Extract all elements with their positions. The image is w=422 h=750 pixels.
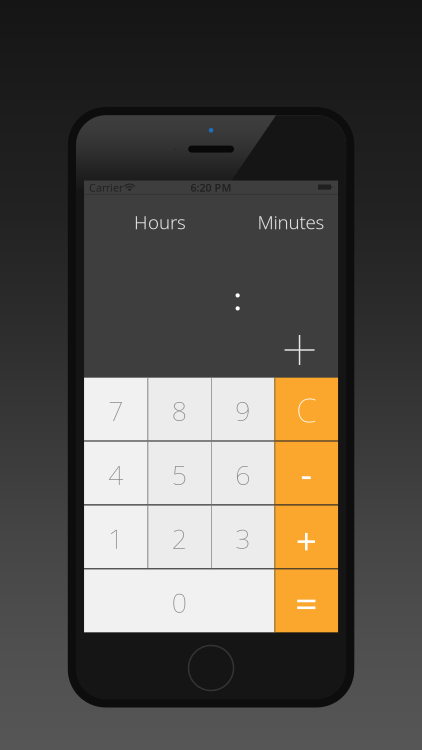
staticText: Hours <box>134 209 186 234</box>
staticText: 2 <box>172 521 187 556</box>
button[interactable]: 2 <box>148 505 211 568</box>
staticText: 6:20 PM <box>191 180 232 195</box>
staticText: Carrier <box>89 180 123 195</box>
staticText: 4 <box>108 457 123 492</box>
button[interactable]: 4 <box>84 441 147 504</box>
staticText: C <box>296 387 316 432</box>
staticText: 9 <box>235 393 250 428</box>
button[interactable]: 1 <box>84 505 147 568</box>
staticText: 8 <box>172 393 187 428</box>
button[interactable]: 7 <box>84 378 147 441</box>
staticText: 1 <box>108 521 123 556</box>
button[interactable]: 9 <box>211 378 275 441</box>
staticText: 7 <box>108 393 123 428</box>
button[interactable]: Clear <box>275 378 338 441</box>
button[interactable]: 3 <box>211 505 275 568</box>
button[interactable]: Minus <box>275 441 338 504</box>
button[interactable]: 5 <box>148 441 211 504</box>
staticText: 3 <box>235 521 250 556</box>
button[interactable]: 8 <box>148 378 211 441</box>
staticText: 6 <box>235 457 250 492</box>
staticText: 5 <box>172 457 187 492</box>
button[interactable]: Add <box>278 328 322 372</box>
button[interactable]: Equals <box>275 569 338 632</box>
button[interactable]: 6 <box>211 441 275 504</box>
button[interactable]: Plus <box>275 505 338 568</box>
button[interactable]: 0 <box>84 569 274 632</box>
staticText: Minutes <box>258 209 325 234</box>
staticText: 0 <box>172 585 187 620</box>
